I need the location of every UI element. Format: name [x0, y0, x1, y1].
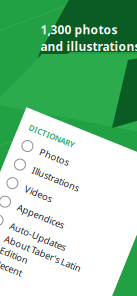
button[interactable]: Videos — [0, 194, 133, 214]
button[interactable]: Photos — [0, 154, 133, 174]
button[interactable]: Illustrations — [0, 174, 133, 194]
staticText: DICTIONARY — [0, 140, 42, 151]
staticText: About Taber's Latin Edition — [12, 251, 94, 276]
button[interactable]: Recent — [0, 274, 133, 294]
button[interactable]: Appendices — [0, 214, 133, 234]
staticText: 1,300 photos — [40, 22, 117, 37]
staticText: and illustrations — [40, 38, 137, 54]
staticText: Photos — [12, 157, 43, 170]
staticText: Auto-Updates — [12, 237, 72, 250]
button[interactable]: Auto-Updates — [0, 234, 133, 254]
staticText: Illustrations — [12, 177, 62, 190]
button[interactable]: About Taber's Latin Edition — [0, 254, 133, 274]
staticText: Videos — [12, 197, 41, 210]
staticText: Appendices — [12, 217, 62, 230]
